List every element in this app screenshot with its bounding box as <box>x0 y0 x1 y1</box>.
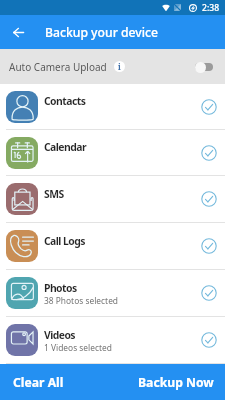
staticText: Backup Now <box>138 374 214 391</box>
staticText: i <box>118 61 121 72</box>
button[interactable]: Calendar <box>0 130 225 176</box>
button[interactable]: Back <box>0 15 36 49</box>
staticText: Calendar <box>44 140 86 154</box>
staticText: Clear All <box>13 374 64 391</box>
button[interactable]: Photos <box>0 270 225 317</box>
button[interactable]: Backup Now <box>112 364 225 400</box>
staticText: Videos <box>44 328 76 342</box>
staticText: Contacts <box>44 94 86 108</box>
staticText: 38 Photos selected <box>44 295 119 304</box>
button[interactable]: Call Logs <box>0 223 225 270</box>
button[interactable]: Auto Camera Upload toggle <box>195 60 213 74</box>
staticText: Backup your device <box>45 24 158 41</box>
button[interactable]: Videos <box>0 317 225 364</box>
staticText: Call Logs <box>44 234 85 248</box>
staticText: 2:38 <box>202 2 220 14</box>
staticText: Photos <box>44 281 77 295</box>
button[interactable]: Auto Camera Upload <box>0 49 225 84</box>
button[interactable]: SMS <box>0 176 225 223</box>
staticText: 1 Videos selected <box>44 342 112 351</box>
button[interactable]: Clear All <box>0 364 112 400</box>
staticText: Auto Camera Upload <box>9 60 107 74</box>
button[interactable]: Contacts <box>0 84 225 130</box>
staticText: SMS <box>44 187 64 201</box>
